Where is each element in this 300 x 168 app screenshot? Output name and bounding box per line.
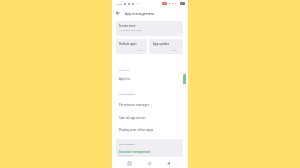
staticText: Autostart management — [119, 150, 151, 154]
staticText: 1 h 54 min used today — [119, 29, 142, 32]
staticText: 2 new — [171, 49, 177, 52]
staticText: Display over other apps — [119, 128, 154, 132]
button[interactable]: Recents — [124, 158, 134, 168]
button[interactable] — [116, 39, 147, 54]
staticText: More settings — [119, 142, 135, 145]
staticText: 3 apps allowed — [119, 154, 133, 157]
button[interactable] — [116, 21, 183, 36]
staticText: App management — [125, 11, 155, 16]
button[interactable] — [149, 39, 183, 54]
button[interactable] — [112, 72, 188, 84]
button[interactable] — [116, 139, 183, 157]
button[interactable]: Back — [114, 9, 122, 17]
button[interactable] — [112, 99, 188, 111]
button[interactable]: Back — [163, 158, 173, 168]
staticText: Special app access — [119, 116, 146, 120]
button[interactable] — [112, 112, 188, 124]
staticText: 10:09 — [116, 2, 123, 5]
staticText: App list — [119, 77, 130, 81]
staticText: 3 set — [137, 49, 142, 52]
button[interactable] — [112, 124, 188, 136]
button[interactable]: Home — [144, 158, 154, 168]
staticText: App update — [153, 42, 170, 46]
staticText: Default apps — [119, 42, 137, 46]
staticText: Screen time — [119, 24, 136, 28]
staticText: PERMISSIONS — [119, 92, 135, 95]
staticText: ALL APPS — [119, 68, 130, 71]
staticText: Permission manager — [119, 103, 150, 107]
